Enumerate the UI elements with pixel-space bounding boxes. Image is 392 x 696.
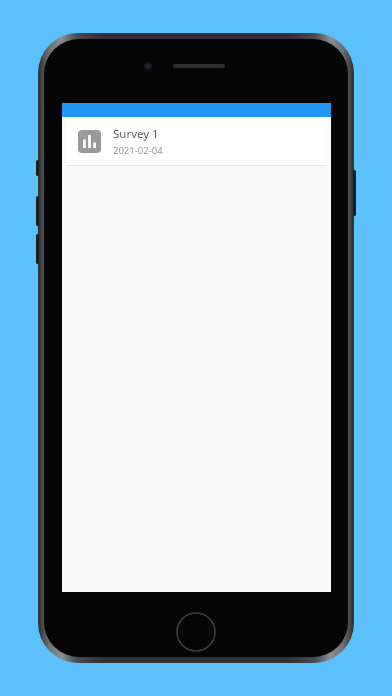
staticText: 2021-02-04: [113, 144, 163, 157]
button[interactable]: Home: [176, 612, 216, 652]
button[interactable]: Survey 1: [66, 118, 327, 165]
staticText: Survey 1: [113, 126, 159, 142]
